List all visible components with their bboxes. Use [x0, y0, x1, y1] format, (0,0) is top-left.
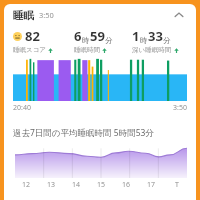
staticText: 17 [147, 180, 156, 190]
staticText: 睡眠時間 [74, 46, 100, 54]
staticText: 時 [82, 36, 90, 45]
staticText: 3:50 [39, 10, 54, 20]
staticText: 深い睡眠時間 [132, 46, 172, 54]
button[interactable]: Collapse [170, 6, 188, 24]
button[interactable] [15, 145, 187, 178]
staticText: 12 [22, 180, 31, 190]
staticText: 1 [132, 27, 140, 45]
button[interactable]: 82 [13, 26, 74, 54]
staticText: 33 [148, 27, 163, 45]
button[interactable] [13, 58, 187, 101]
staticText: 13 [47, 180, 56, 190]
staticText: 分 [163, 36, 171, 45]
staticText: 分 [105, 36, 113, 45]
staticText: 15 [97, 180, 106, 190]
staticText: 20:40 [13, 103, 31, 113]
button[interactable]: 1 [132, 26, 190, 54]
staticText: 14 [72, 180, 81, 190]
staticText: 59 [90, 27, 105, 45]
staticText: 時 [140, 36, 148, 45]
staticText: 6 [74, 27, 82, 45]
staticText: 睡眠スコア [13, 46, 46, 54]
button[interactable]: 6 [74, 26, 132, 54]
staticText: 過去7日間の平均睡眠時間 5時間53分 [13, 127, 154, 139]
staticText: 16 [122, 180, 131, 190]
staticText: 82 [25, 27, 40, 45]
staticText: 3:50 [173, 103, 187, 113]
staticText: 睡眠 [13, 9, 34, 22]
staticText: T [175, 180, 179, 190]
